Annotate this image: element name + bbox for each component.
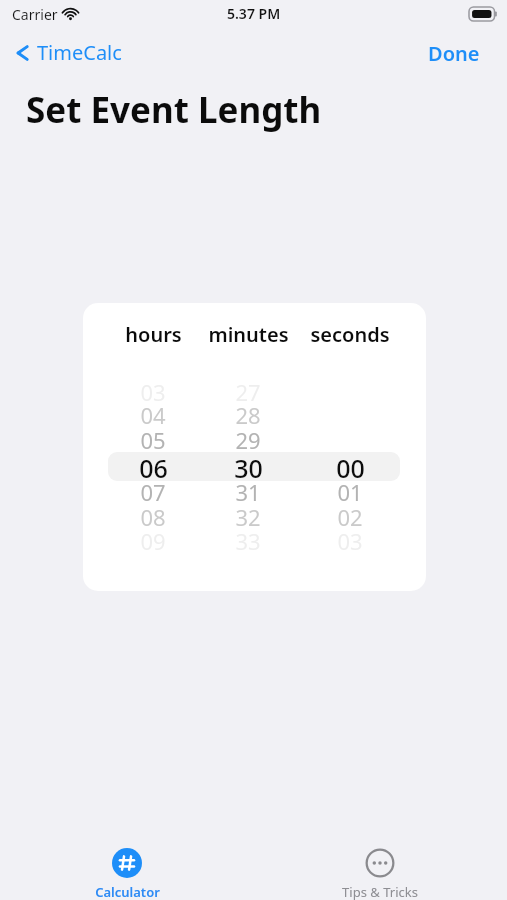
staticText: 32: [235, 502, 261, 532]
button[interactable]: TimeCalc: [10, 36, 128, 69]
staticText: 28: [235, 400, 261, 430]
staticText: 06: [139, 451, 168, 481]
staticText: 27: [235, 377, 261, 407]
staticText: 00: [336, 451, 365, 481]
button[interactable]: Time wheel: [290, 371, 410, 561]
staticText: 29: [235, 425, 261, 455]
staticText: Set Event Length: [26, 86, 322, 134]
staticText: 5.37 PM: [227, 4, 281, 23]
staticText: 01: [337, 477, 363, 507]
staticText: TimeCalc: [37, 39, 122, 66]
staticText: 08: [140, 502, 166, 532]
staticText: Done: [428, 40, 480, 67]
button[interactable]: Calculator: [64, 842, 190, 900]
staticText: Tips & Tricks: [342, 883, 418, 900]
staticText: 02: [337, 502, 363, 532]
staticText: minutes: [208, 321, 289, 348]
staticText: 05: [140, 425, 166, 455]
button[interactable]: Time wheel: [188, 371, 308, 561]
button[interactable]: Tips & Tricks: [317, 842, 443, 900]
staticText: 03: [337, 526, 363, 556]
staticText: seconds: [310, 321, 390, 348]
button[interactable]: Time wheel: [93, 371, 213, 561]
staticText: 07: [140, 477, 166, 507]
staticText: 31: [235, 477, 261, 507]
staticText: 03: [140, 377, 166, 407]
staticText: 33: [235, 526, 261, 556]
staticText: Calculator: [95, 883, 160, 900]
staticText: 30: [234, 451, 263, 481]
staticText: 04: [140, 400, 166, 430]
staticText: 09: [140, 526, 166, 556]
staticText: Carrier: [12, 5, 58, 24]
staticText: hours: [125, 321, 182, 348]
button[interactable]: Done: [424, 37, 484, 70]
